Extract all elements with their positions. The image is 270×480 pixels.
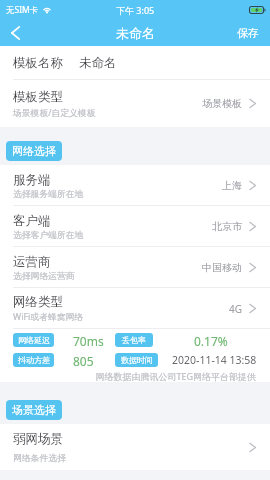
staticText: 模板类型 [13, 89, 63, 105]
button[interactable]: 模板类型 [0, 80, 270, 127]
staticText: 选择客户端所在地 [13, 230, 84, 241]
staticText: 场景模板 [202, 97, 242, 110]
staticText: 丢包率 [122, 335, 146, 345]
button[interactable]: 模板名称 [0, 46, 270, 79]
staticText: 网络延迟 [18, 335, 50, 345]
staticText: 选择网络运营商 [13, 271, 75, 282]
staticText: 网络条件选择 [13, 453, 66, 464]
staticText: 数据时间 [121, 355, 153, 365]
staticText: 70ms [73, 333, 104, 347]
staticText: 弱网场景 [13, 431, 63, 447]
staticText: 中国移动 [202, 261, 242, 274]
staticText: 无SIM卡 [6, 4, 39, 16]
staticText: 网络选择 [12, 144, 56, 158]
button[interactable]: 客户端 [0, 206, 270, 247]
staticText: 未命名 [79, 55, 117, 71]
button[interactable]: 弱网场景 [0, 424, 270, 470]
button[interactable]: 网络选择 [6, 141, 62, 161]
button[interactable]: 场景选择 [6, 400, 62, 420]
staticText: 2020-11-14 13:58 [172, 353, 257, 367]
staticText: 服务端 [13, 172, 51, 188]
staticText: 下午 3:05 [116, 4, 155, 16]
staticText: 4G [229, 302, 242, 316]
staticText: 模板名称 [13, 55, 63, 71]
button[interactable]: 服务端 [0, 165, 270, 206]
staticText: 未命名 [116, 25, 155, 41]
staticText: 场景模板/自定义模板 [13, 107, 96, 119]
button[interactable]: 保存 [226, 20, 270, 46]
staticText: WiFi或者蜂窝网络 [13, 311, 84, 323]
staticText: 网络数据由腾讯公司TEG网络平台部提供 [13, 370, 256, 382]
staticText: 805 [73, 353, 94, 367]
staticText: 客户端 [13, 213, 51, 229]
staticText: 北京市 [212, 220, 242, 233]
button[interactable]: Back [0, 20, 30, 46]
staticText: 0.17% [194, 333, 228, 347]
staticText: 场景选择 [12, 403, 56, 417]
staticText: 选择服务端所在地 [13, 189, 84, 200]
staticText: 运营商 [13, 254, 51, 270]
staticText: 上海 [222, 179, 242, 192]
staticText: 抖动方差 [18, 355, 50, 365]
button[interactable]: 运营商 [0, 247, 270, 288]
button[interactable]: 网络类型 [0, 288, 270, 329]
staticText: 网络类型 [13, 294, 63, 310]
staticText: 保存 [237, 26, 259, 40]
